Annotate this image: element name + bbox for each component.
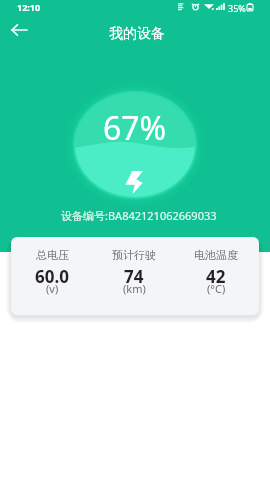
- staticText: 预计行驶: [112, 248, 156, 262]
- staticText: 我的设备: [109, 25, 165, 43]
- button[interactable]: 预计行驶: [93, 237, 175, 315]
- staticText: 总电压: [36, 248, 69, 262]
- staticText: (v): [46, 281, 59, 296]
- staticText: 12:10: [17, 1, 41, 13]
- staticText: 35%: [228, 2, 246, 14]
- button[interactable]: 电池温度: [175, 237, 257, 315]
- staticText: 67%: [103, 106, 167, 150]
- staticText: 42: [206, 265, 226, 288]
- staticText: (km): [123, 281, 146, 296]
- staticText: 60.0: [35, 265, 69, 288]
- button[interactable]: 总电压: [11, 237, 93, 315]
- staticText: (°C): [207, 281, 226, 296]
- staticText: 电池温度: [194, 248, 238, 262]
- staticText: 设备编号:BA842121062669033: [61, 208, 217, 223]
- button[interactable]: Back: [4, 15, 34, 45]
- staticText: 74: [124, 265, 144, 288]
